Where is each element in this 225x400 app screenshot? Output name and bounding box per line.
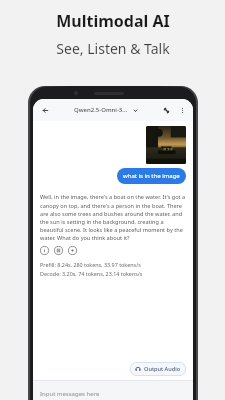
staticText: Decode: 3.20s, 74 tokens, 23.14 tokens/s [40, 270, 143, 277]
staticText: Input messages here [40, 390, 100, 398]
staticText: Multimodal AI [56, 10, 170, 32]
button[interactable]: Call [160, 104, 173, 117]
button[interactable]: what is in the image [117, 168, 186, 184]
staticText: Output Audio [144, 365, 181, 373]
button[interactable]: Information [40, 246, 49, 255]
staticText: See, Listen & Talk [56, 39, 170, 58]
button[interactable]: Input messages here [33, 381, 193, 400]
button[interactable]: Play audio [68, 246, 77, 255]
staticText: Qwen2.5-Omni-3... [74, 106, 128, 114]
button[interactable]: More options [177, 105, 188, 116]
button[interactable]: Qwen2.5-Omni-3... [74, 106, 138, 114]
staticText: what is in the image [123, 172, 180, 180]
staticText: Well, in the image, there's a boat on th… [40, 193, 186, 241]
staticText: Prefill: 8.24s, 280 tokens, 33.97 tokens… [40, 261, 141, 268]
button[interactable]: Copy [54, 246, 63, 255]
button[interactable]: Attached photo of a boat on water [146, 126, 186, 164]
button[interactable]: Back [38, 103, 52, 117]
button[interactable]: Output Audio [130, 362, 186, 376]
